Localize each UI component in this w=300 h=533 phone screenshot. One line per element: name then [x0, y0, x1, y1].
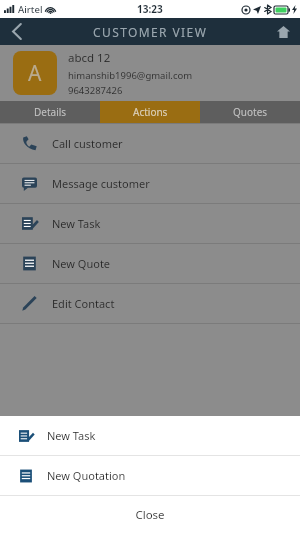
staticText: New Quotation [47, 468, 126, 483]
staticText: himanshib1996@gmail.com [68, 69, 193, 82]
staticText: 13:23 [137, 2, 163, 16]
staticText: New Quote [52, 256, 111, 271]
button[interactable]: Close [0, 496, 300, 533]
staticText: 9643287426 [68, 84, 123, 97]
button[interactable]: Message customer [0, 164, 300, 204]
button[interactable]: Home [266, 18, 300, 45]
staticText: New Task [52, 216, 101, 231]
staticText: A [28, 59, 42, 88]
staticText: Close [135, 507, 165, 523]
button[interactable]: Quotes [200, 101, 300, 123]
button[interactable]: New Quotation [0, 456, 300, 495]
staticText: Details [34, 105, 67, 119]
button[interactable]: Details [0, 101, 100, 123]
button[interactable]: New Task [0, 416, 300, 455]
staticText: Call customer [52, 136, 123, 151]
staticText: Airtel [18, 3, 43, 16]
button[interactable]: Back [0, 18, 34, 45]
staticText: Message customer [52, 176, 150, 191]
staticText: CUSTOMER VIEW [93, 24, 208, 40]
staticText: abcd 12 [68, 50, 111, 66]
button[interactable]: New Task [0, 204, 300, 244]
staticText: New Task [47, 428, 96, 443]
button[interactable]: Call customer [0, 124, 300, 164]
button[interactable]: New Quote [0, 244, 300, 284]
button[interactable]: Actions [100, 101, 200, 123]
button[interactable]: Edit Contact [0, 284, 300, 324]
staticText: Quotes [233, 105, 268, 119]
staticText: Actions [133, 105, 168, 119]
staticText: Edit Contact [52, 296, 115, 311]
